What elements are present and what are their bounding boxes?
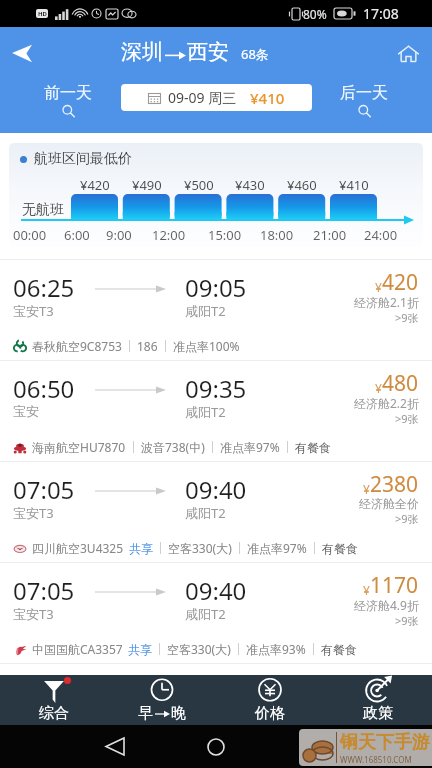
staticText: ¥490 [132,176,162,194]
button[interactable]: 07:05 [0,563,432,663]
staticText: ¥410 [339,176,369,194]
staticText: 15:00 [208,226,242,244]
staticText: 空客330(大) [167,641,231,657]
staticText: 铜天下手游 [340,731,430,754]
staticText: 空客330(大) [168,540,232,556]
staticText: 00:00 [13,226,47,244]
staticText: ¥ [375,380,382,396]
staticText: 经济舱全价 [359,496,419,511]
button[interactable]: 06:50 [0,361,432,461]
staticText: 咸阳T2 [185,302,226,320]
staticText: HD [38,10,47,18]
staticText: ¥ [363,481,370,497]
staticText: 价格 [255,704,285,723]
staticText: ¥420 [80,176,110,194]
staticText: 咸阳T2 [185,605,226,623]
button[interactable]: 后一天 [340,83,388,117]
staticText: 06:25 [13,271,75,304]
staticText: 经济舱2.1折 [354,294,419,310]
staticText: ¥430 [235,176,265,194]
button[interactable]: 早 [108,675,216,725]
staticText: 宝安T3 [13,605,54,623]
staticText: 1170 [370,571,419,600]
staticText: >9张 [395,310,419,325]
staticText: 准点率93% [246,641,306,657]
staticText: ¥500 [184,176,214,194]
staticText: 政策 [363,704,393,723]
button[interactable]: 前一天 [44,83,92,117]
staticText: 前一天 [44,83,92,103]
staticText: 后一天 [340,83,388,103]
staticText: 24:00 [364,226,398,244]
staticText: 共享 [128,642,152,657]
staticText: 有餐食 [295,440,331,455]
staticText: 有餐食 [322,541,358,556]
button[interactable]: Home [384,29,432,77]
staticText: 晚 [171,704,186,723]
button[interactable]: 政策 [324,675,432,725]
button[interactable]: Back [0,27,46,79]
button[interactable]: 综合 [0,675,108,725]
staticText: 12:00 [152,226,186,244]
staticText: 17:08 [363,4,399,23]
staticText: 海南航空HU7870 [32,439,126,455]
staticText: >9张 [395,511,419,526]
staticText: 西安 [187,39,229,65]
staticText: 186 [137,338,158,354]
staticText: 18:00 [260,226,294,244]
staticText: 无航班 [22,201,64,219]
staticText: 宝安 [13,403,39,419]
staticText: 09-09 周三 [168,88,237,107]
staticText: WWW.168510.COM [340,754,412,765]
button[interactable]: 07:05 [0,462,432,562]
staticText: 春秋航空9C8753 [32,338,122,354]
staticText: 共享 [129,541,153,556]
staticText: 80% [303,6,327,22]
staticText: 420 [382,268,419,297]
staticText: 咸阳T2 [185,403,226,421]
staticText: 深圳 [121,39,163,65]
other: Home [207,738,225,756]
staticText: 咸阳T2 [185,504,226,522]
staticText: 6:00 [64,226,90,244]
staticText: 09:35 [185,372,247,405]
staticText: 09:40 [185,574,247,607]
staticText: 有餐食 [321,642,357,657]
staticText: 21:00 [313,226,347,244]
staticText: 06:50 [13,372,75,405]
staticText: 经济舱2.2折 [354,395,419,411]
staticText: ¥410 [250,88,285,108]
staticText: 经济舱4.9折 [354,597,419,613]
staticText: ¥ [363,582,370,598]
staticText: 480 [382,369,419,398]
staticText: >9张 [395,411,419,426]
staticText: 宝安T3 [13,302,54,320]
staticText: 宝安T3 [13,504,54,522]
other: Back [106,738,124,755]
staticText: 四川航空3U4325 [32,540,124,556]
staticText: 准点率97% [220,439,280,455]
staticText: 早 [138,704,153,723]
staticText: >9张 [395,613,419,628]
button[interactable]: 06:25 [0,260,432,360]
staticText: 07:05 [13,473,75,506]
staticText: 09:40 [185,473,247,506]
staticText: ¥460 [287,176,317,194]
staticText: 2380 [370,470,419,499]
staticText: 综合 [39,704,69,723]
staticText: ¥ [375,279,382,295]
button[interactable]: 09-09 周三 [121,84,312,111]
staticText: 68条 [241,45,269,63]
staticText: 09:05 [185,271,247,304]
staticText: 准点率100% [173,338,240,354]
staticText: 航班区间最低价 [34,150,132,168]
staticText: 中国国航CA3357 [32,641,123,657]
staticText: 准点率97% [247,540,307,556]
staticText: 9:00 [106,226,132,244]
staticText: 07:05 [13,574,75,607]
staticText: 波音738(中) [141,439,205,455]
button[interactable]: 价格 [216,675,324,725]
